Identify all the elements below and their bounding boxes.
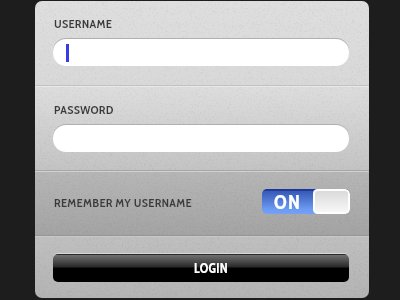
staticText: USERNAME [54,16,113,31]
staticText: LOGIN [194,260,228,276]
button[interactable] [53,125,349,152]
button[interactable]: LOGIN [53,254,349,282]
button[interactable]: Remember my username toggle [262,189,350,214]
staticText: PASSWORD [54,102,114,117]
staticText: ON [274,190,302,214]
button[interactable] [53,39,349,66]
staticText: REMEMBER MY USERNAME [54,195,192,210]
